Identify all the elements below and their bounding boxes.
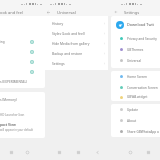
button[interactable]: Download Twit bbox=[111, 16, 160, 33]
button[interactable]: Conversation Screen bbox=[111, 82, 160, 93]
staticText: Share GBWhatsApp a bbox=[127, 130, 159, 134]
staticText: GBWA widget bbox=[127, 95, 148, 99]
button[interactable]: s (EXPERIMENTAL) bbox=[0, 77, 45, 86]
staticText: Styles (Look and feel) bbox=[52, 31, 85, 35]
staticText: Conversation Screen bbox=[127, 86, 158, 90]
button[interactable]: Home bbox=[128, 150, 133, 155]
button[interactable]: Recents bbox=[76, 150, 81, 155]
staticText: GBThemes bbox=[127, 48, 144, 52]
staticText: ing bbox=[0, 40, 5, 44]
staticText: History bbox=[52, 21, 64, 25]
button[interactable]: Settings bbox=[45, 58, 108, 68]
staticText: Universal bbox=[127, 59, 141, 63]
staticText: s (Memory) bbox=[0, 98, 17, 102]
button[interactable] bbox=[0, 67, 45, 77]
button[interactable]: Privacy and Security bbox=[111, 33, 160, 44]
button[interactable]: Back bbox=[114, 10, 118, 14]
button[interactable]: s (Memory) bbox=[0, 96, 45, 104]
button[interactable]: Back bbox=[95, 150, 100, 155]
button[interactable]: HD Launcher Icon bbox=[0, 111, 45, 118]
staticText: Hide Media from gallery bbox=[52, 41, 90, 45]
staticText: will appear in your default bbox=[0, 128, 33, 132]
staticText: Download Twit bbox=[127, 22, 154, 27]
staticText: About bbox=[127, 119, 137, 123]
button[interactable] bbox=[0, 57, 45, 67]
button[interactable]: Universal bbox=[111, 55, 160, 66]
staticText: HD Launcher Icon bbox=[0, 113, 25, 117]
staticText: s (EXPERIMENTAL) bbox=[0, 80, 28, 84]
button[interactable]: About bbox=[111, 115, 160, 126]
staticText: Universal bbox=[57, 9, 76, 15]
button[interactable]: Recents bbox=[57, 150, 62, 155]
button[interactable]: Home bbox=[25, 150, 30, 155]
staticText: pact View bbox=[0, 122, 16, 126]
button[interactable] bbox=[0, 47, 45, 57]
button[interactable]: History bbox=[45, 18, 108, 28]
staticText: Home Screen bbox=[127, 75, 147, 79]
button[interactable]: Recents bbox=[9, 150, 14, 155]
button[interactable]: Styles (Look and feel) bbox=[45, 28, 108, 38]
button[interactable]: GBThemes bbox=[111, 44, 160, 55]
button[interactable]: Share GBWhatsApp a bbox=[111, 126, 160, 137]
button[interactable]: GBWA widget bbox=[111, 93, 160, 101]
button[interactable]: Recents bbox=[146, 150, 151, 155]
button[interactable]: ing bbox=[0, 37, 45, 47]
staticText: Privacy and Security bbox=[127, 37, 157, 41]
button[interactable]: Hide Media from gallery bbox=[45, 38, 108, 48]
staticText: Settings bbox=[52, 61, 65, 65]
staticText: Backup and restore bbox=[52, 51, 83, 55]
button[interactable]: Home Screen bbox=[111, 71, 160, 82]
staticText: Settings bbox=[124, 10, 140, 15]
button[interactable]: Backup and restore bbox=[45, 48, 108, 58]
staticText: Update bbox=[127, 108, 138, 112]
button[interactable]: Update bbox=[111, 104, 160, 115]
staticText: ook and feel bbox=[0, 10, 24, 15]
button[interactable]: Back bbox=[46, 10, 51, 15]
